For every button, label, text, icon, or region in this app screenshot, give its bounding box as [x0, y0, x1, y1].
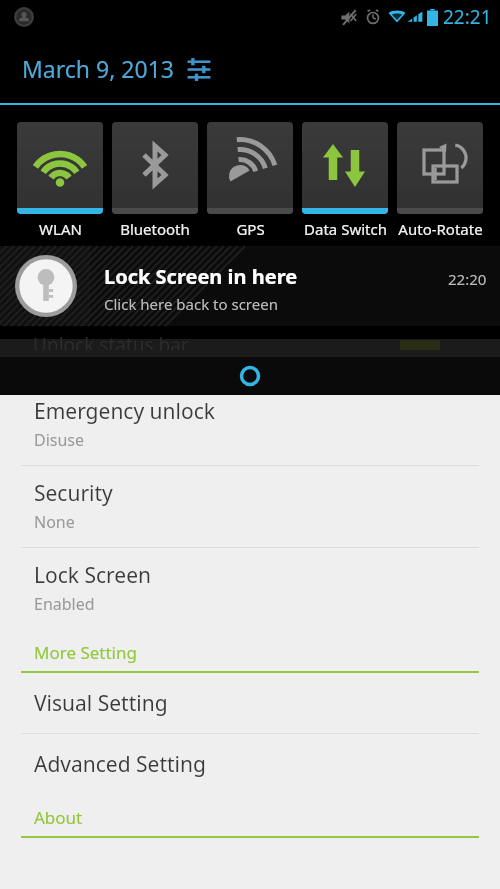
button[interactable]: Advanced Setting — [0, 734, 500, 794]
button[interactable]: Bluetooth — [112, 122, 198, 214]
button[interactable]: Security — [0, 466, 500, 547]
staticText: Visual Setting — [34, 689, 168, 718]
staticText: More Setting — [34, 641, 137, 664]
staticText: Emergency unlock — [34, 397, 215, 426]
button[interactable]: Emergency unlock — [0, 384, 500, 465]
staticText: About — [34, 806, 83, 829]
staticText: Auto-Rotate — [398, 219, 483, 239]
button[interactable]: Lock Screen in here — [0, 246, 500, 326]
button[interactable]: GPS — [207, 122, 293, 214]
staticText: Bluetooth — [120, 219, 190, 239]
button[interactable]: Lock Screen — [0, 548, 500, 629]
staticText: March 9, 2013 — [22, 53, 174, 84]
staticText: None — [34, 511, 75, 533]
button[interactable]: Auto-Rotate — [397, 122, 483, 214]
staticText: 22:21 — [443, 4, 492, 30]
staticText: Click here back to screen — [104, 294, 278, 314]
staticText: WLAN — [39, 219, 82, 239]
staticText: Advanced Setting — [34, 750, 206, 779]
staticText: Unlock status bar — [33, 332, 189, 350]
button[interactable]: Data Switch — [302, 122, 388, 214]
button[interactable]: Visual Setting — [0, 673, 500, 733]
staticText: Disuse — [34, 429, 85, 451]
button[interactable]: Settings — [182, 52, 216, 86]
staticText: Lock Screen in here — [104, 263, 298, 290]
staticText: Lock Screen — [34, 561, 151, 590]
staticText: 22:20 — [448, 269, 487, 289]
staticText: Data Switch — [304, 219, 387, 239]
staticText: Enabled — [34, 593, 95, 615]
staticText: GPS — [236, 219, 265, 239]
button[interactable]: WLAN — [17, 122, 103, 214]
staticText: Security — [34, 479, 113, 508]
